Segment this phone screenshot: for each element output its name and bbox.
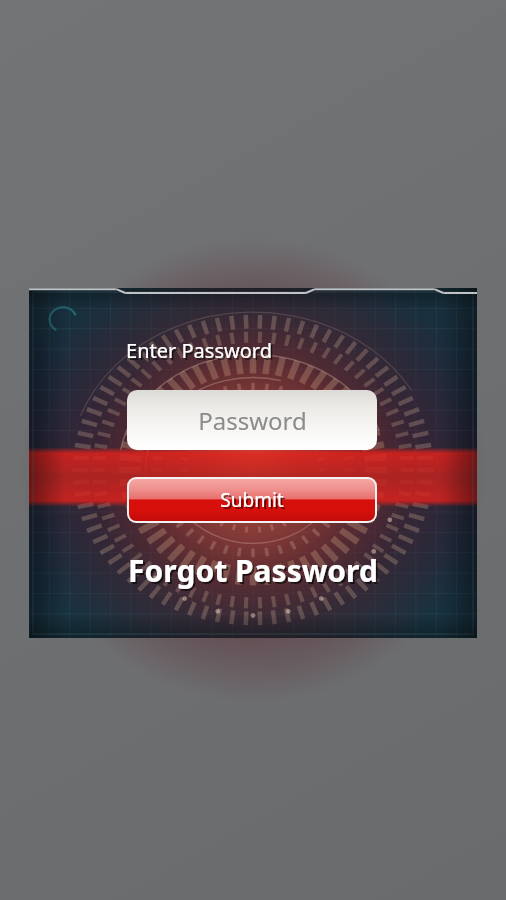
staticText: Submit: [220, 487, 284, 513]
button[interactable]: Submit: [129, 479, 375, 521]
staticText: Forgot Password: [130, 552, 380, 592]
button[interactable]: Password: [127, 390, 377, 450]
staticText: Forgot Password: [128, 550, 378, 590]
button[interactable]: Forgot Password: [29, 550, 477, 590]
staticText: Enter Password: [126, 337, 272, 364]
staticText: Password: [198, 404, 307, 437]
staticText: Submit: [222, 489, 286, 515]
staticText: Enter Password: [128, 339, 274, 366]
